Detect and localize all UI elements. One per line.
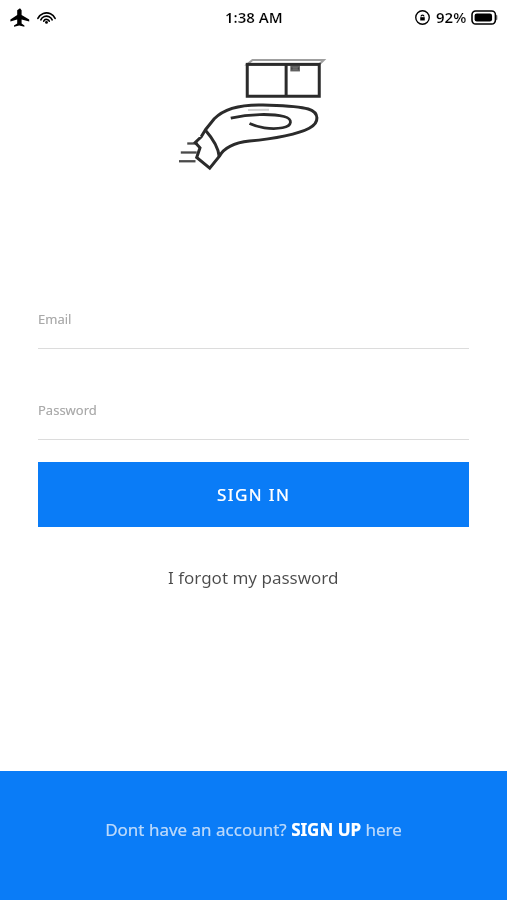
staticText: I forgot my password xyxy=(168,566,339,589)
button[interactable]: Dont have an account? SIGN UP here xyxy=(0,771,507,900)
staticText: 1:38 AM xyxy=(225,7,283,27)
staticText: SIGN IN xyxy=(217,483,291,506)
button[interactable]: SIGN IN xyxy=(38,462,469,527)
other: Delivery logo xyxy=(179,55,329,180)
staticText: 92% xyxy=(436,7,467,27)
button[interactable]: Password xyxy=(38,401,469,440)
button[interactable]: I forgot my password xyxy=(156,560,351,595)
staticText: Email xyxy=(38,310,72,328)
button[interactable]: Email xyxy=(38,310,469,349)
staticText: Password xyxy=(38,401,97,419)
staticText: Dont have an account? SIGN UP here xyxy=(105,818,402,841)
